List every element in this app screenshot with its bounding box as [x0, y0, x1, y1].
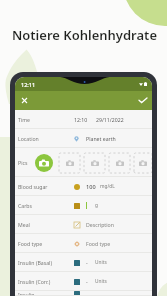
- staticText: Food type: [86, 240, 111, 247]
- staticText: g: [95, 202, 98, 209]
- staticText: Planet earth: [86, 135, 116, 142]
- button[interactable]: Location: [15, 129, 152, 148]
- staticText: Blood sugar: [18, 183, 48, 190]
- staticText: mg/dL: [100, 183, 115, 190]
- button[interactable]: Take picture: [35, 154, 53, 172]
- button[interactable]: Carbs: [15, 196, 152, 215]
- button[interactable]: Insulin (Basal): [15, 253, 152, 272]
- button[interactable]: Insulin (Corr.): [15, 272, 152, 291]
- staticText: 100: [86, 183, 96, 191]
- button[interactable]: Save: [133, 91, 152, 110]
- staticText: Insulin (Corr.): [18, 278, 51, 285]
- button[interactable]: Meal: [15, 215, 152, 234]
- button[interactable]: Add picture: [134, 153, 152, 173]
- staticText: -: [86, 278, 88, 285]
- staticText: Pics: [18, 159, 28, 166]
- staticText: 12:10: [74, 116, 88, 123]
- button[interactable]: Blood sugar: [15, 177, 152, 196]
- staticText: 12:11: [21, 81, 36, 88]
- staticText: Insulin (Basal): [18, 259, 53, 266]
- staticText: Insulin: [18, 291, 35, 296]
- staticText: Units: [95, 278, 107, 285]
- button[interactable]: Add picture: [84, 153, 105, 173]
- button[interactable]: Time: [15, 110, 152, 129]
- staticText: -: [86, 259, 88, 266]
- button[interactable]: Add picture: [109, 153, 130, 173]
- staticText: Description: [86, 221, 114, 228]
- staticText: Carbs: [18, 202, 33, 209]
- button[interactable]: Close: [15, 91, 34, 110]
- staticText: Food type: [18, 240, 43, 247]
- button[interactable]: Insulin: [15, 291, 152, 296]
- button[interactable]: Pics: [15, 148, 152, 177]
- button[interactable]: Add picture: [59, 153, 80, 173]
- staticText: 29/11/2022: [96, 116, 124, 123]
- staticText: Notiere Kohlenhydrate: [12, 26, 157, 44]
- staticText: Location: [18, 135, 39, 142]
- staticText: Meal: [18, 221, 30, 228]
- button[interactable]: Food type: [15, 234, 152, 253]
- staticText: Time: [18, 116, 30, 123]
- staticText: Units: [95, 259, 107, 266]
